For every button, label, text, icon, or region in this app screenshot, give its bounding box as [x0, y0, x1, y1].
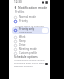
staticText: Priority — [19, 19, 28, 23]
button[interactable]: Custom profile — [14, 51, 50, 55]
button[interactable]: Drive — [14, 43, 50, 47]
staticText: 12:30 — [14, 0, 22, 4]
button[interactable]: Priority only — [12, 27, 49, 34]
button[interactable]: Priority — [14, 19, 50, 23]
staticText: weekday evening — [14, 65, 33, 68]
staticText: Profiles — [15, 10, 25, 14]
button[interactable]: Sleep — [14, 39, 50, 43]
staticText: Normal mode — [19, 15, 36, 19]
button[interactable]: Normal mode — [14, 15, 50, 19]
staticText: scheduled quiet hours every — [14, 62, 45, 65]
staticText: Allow alarms — [19, 31, 33, 34]
button[interactable]: Meeting mode — [14, 47, 50, 51]
button[interactable]: Back — [13, 5, 17, 9]
button[interactable]: Automatically enable during — [14, 59, 48, 68]
staticText: Drive — [19, 43, 26, 47]
staticText: Custom profile — [19, 51, 37, 55]
staticText: Priority only — [19, 27, 35, 31]
staticText: Notification mode — [18, 5, 48, 10]
button[interactable]: Work — [14, 35, 50, 39]
staticText: Schedule options — [14, 55, 38, 59]
staticText: Meeting mode — [19, 47, 37, 51]
staticText: Choose when to interrupt — [15, 24, 44, 27]
staticText: Sleep — [19, 39, 26, 43]
staticText: Work — [19, 35, 26, 39]
staticText: Automatically enable during — [14, 59, 45, 62]
